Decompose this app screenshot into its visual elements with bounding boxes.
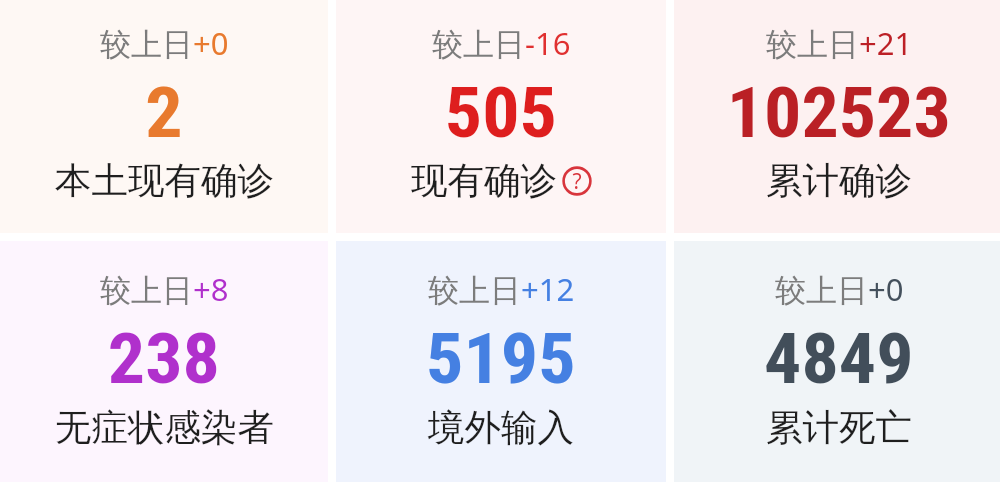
staticText: 较上日+8 <box>100 268 229 310</box>
button[interactable]: 较上日+21 <box>674 0 1000 233</box>
button[interactable]: 较上日+0 <box>674 241 1000 482</box>
button[interactable]: 帮助 <box>562 166 592 196</box>
button[interactable]: 较上日+12 <box>336 241 666 482</box>
staticText: 4849 <box>764 317 914 400</box>
staticText: 较上日+12 <box>428 268 575 310</box>
staticText: 现有确诊 <box>411 158 557 204</box>
staticText: 较上日+21 <box>766 22 913 64</box>
staticText: 较上日-16 <box>432 22 571 64</box>
staticText: 累计死亡 <box>766 405 912 451</box>
staticText: 境外输入 <box>428 405 574 451</box>
staticText: 238 <box>108 317 220 400</box>
staticText: 较上日+0 <box>775 268 904 310</box>
button[interactable]: 较上日-16 <box>336 0 666 233</box>
staticText: ? <box>572 167 582 196</box>
staticText: 102523 <box>727 71 951 154</box>
staticText: 累计确诊 <box>766 158 912 204</box>
staticText: 5195 <box>426 317 576 400</box>
staticText: 无症状感染者 <box>55 405 274 451</box>
button[interactable]: 较上日+8 <box>0 241 328 482</box>
staticText: 2 <box>145 71 183 154</box>
button[interactable]: 较上日+0 <box>0 0 328 233</box>
staticText: 505 <box>445 71 557 154</box>
staticText: 较上日+0 <box>100 22 229 64</box>
staticText: 本土现有确诊 <box>55 158 274 204</box>
